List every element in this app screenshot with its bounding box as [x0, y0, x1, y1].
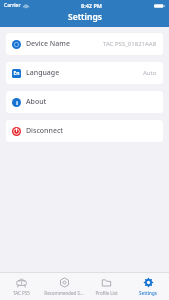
- button[interactable]: Recommended S...: [43, 273, 85, 300]
- staticText: Device Name: [26, 39, 70, 49]
- staticText: 8:42 PM: [81, 2, 102, 9]
- staticText: Recommended S...: [44, 290, 84, 296]
- button[interactable]: Disconnect: [6, 120, 163, 142]
- staticText: About: [26, 97, 47, 107]
- staticText: Settings: [139, 290, 157, 296]
- staticText: Language: [26, 68, 60, 78]
- staticText: TAC PSS_01821AA8: [103, 40, 157, 48]
- staticText: Settings: [68, 11, 102, 23]
- staticText: Profile List: [95, 290, 118, 296]
- staticText: En: [13, 70, 20, 77]
- staticText: Disconnect: [26, 126, 64, 136]
- button[interactable]: Profile List: [85, 273, 127, 300]
- staticText: i: [16, 99, 18, 106]
- button[interactable]: En: [6, 62, 163, 84]
- button[interactable]: TAC PS5: [0, 273, 43, 300]
- button[interactable]: Device Name: [6, 33, 163, 55]
- button[interactable]: i: [6, 91, 163, 113]
- staticText: Carrier: [4, 2, 21, 9]
- staticText: Auto: [143, 69, 157, 77]
- button[interactable]: Settings: [127, 273, 169, 300]
- staticText: TAC PS5: [13, 290, 30, 296]
